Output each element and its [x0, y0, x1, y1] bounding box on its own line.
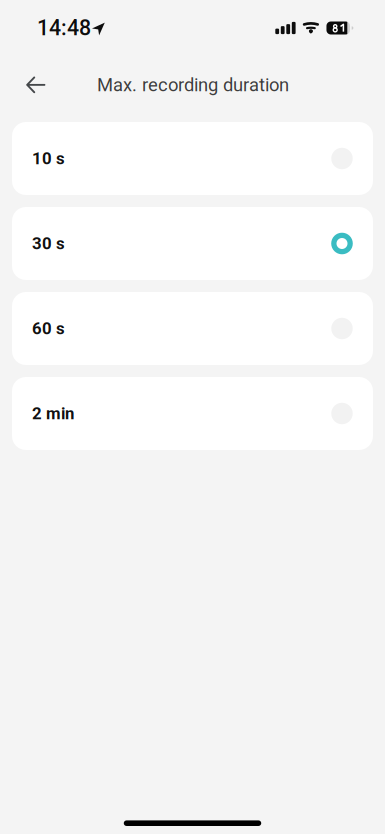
- button[interactable]: Back: [14, 63, 58, 107]
- staticText: 30 s: [32, 234, 65, 253]
- button[interactable]: 60 s: [12, 292, 373, 365]
- button[interactable]: 10 s: [12, 122, 373, 195]
- staticText: 10 s: [32, 149, 65, 168]
- staticText: Max. recording duration: [97, 74, 289, 96]
- button[interactable]: 2 min: [12, 377, 373, 450]
- staticText: 60 s: [32, 319, 65, 338]
- staticText: 2 min: [32, 404, 74, 423]
- button[interactable]: 30 s: [12, 207, 373, 280]
- staticText: 14:48: [37, 15, 91, 40]
